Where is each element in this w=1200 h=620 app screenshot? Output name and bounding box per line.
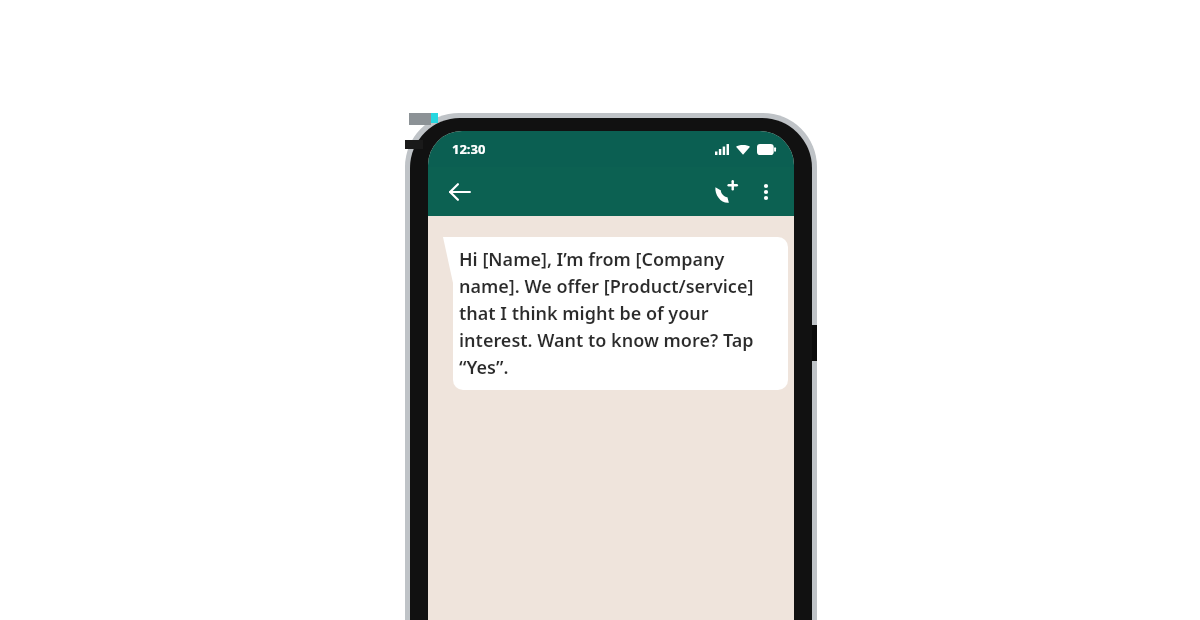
button[interactable]: Add call xyxy=(706,172,746,212)
staticText: Hi [Name], I’m from [Company name]. We o… xyxy=(459,247,774,379)
button[interactable]: Hi [Name], I’m from [Company name]. We o… xyxy=(443,237,788,390)
staticText: 12:30 xyxy=(452,140,486,158)
button[interactable]: Back xyxy=(440,172,480,212)
button[interactable]: More options xyxy=(746,172,786,212)
